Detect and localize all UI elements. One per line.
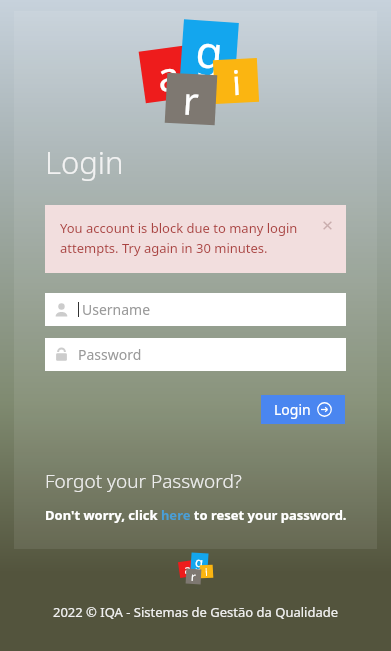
button[interactable]: Close alert (318, 216, 336, 234)
button[interactable]: Password (45, 338, 346, 371)
button[interactable]: Username (45, 293, 346, 326)
staticText: Login (274, 400, 311, 419)
staticText: i (231, 59, 242, 103)
staticText: i (205, 565, 208, 578)
staticText: r (182, 74, 200, 124)
staticText: Forgot your Password? (45, 468, 242, 494)
staticText: You account is block due to many login a… (60, 219, 304, 257)
staticText: Username (82, 300, 151, 319)
staticText: Login (45, 141, 124, 183)
staticText: r (191, 569, 196, 584)
button[interactable]: Login (261, 395, 345, 424)
staticText: 2022 © IQA - Sistemas de Gestão da Quali… (0, 603, 391, 621)
staticText: Password (78, 345, 142, 364)
staticText: a (183, 560, 192, 577)
staticText: g (194, 553, 205, 570)
staticText: a (153, 47, 183, 101)
button[interactable]: Don't worry, click here to reset your pa… (45, 506, 347, 524)
staticText: g (194, 20, 226, 77)
